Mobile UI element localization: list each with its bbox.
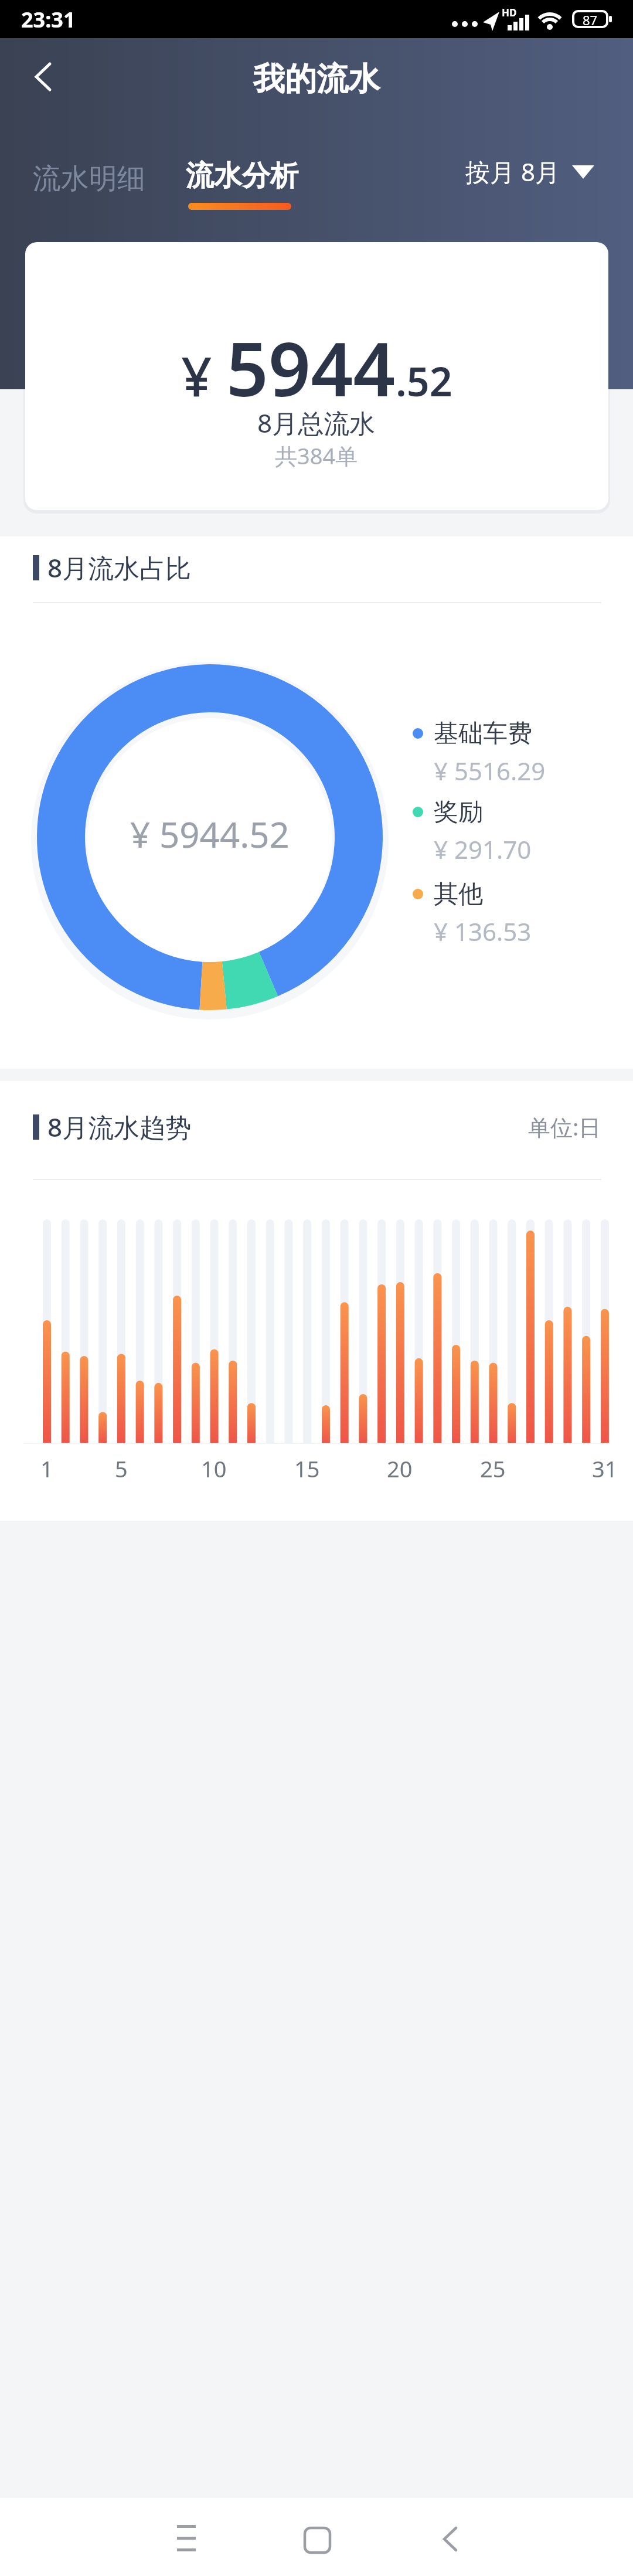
staticText: 8月总流水	[257, 405, 376, 440]
button[interactable]: 流水明细	[23, 152, 158, 205]
staticText: .52	[396, 354, 452, 408]
staticText: 5	[115, 1453, 128, 1484]
staticText: 流水分析	[186, 158, 298, 193]
staticText: 8月流水趋势	[47, 1109, 192, 1144]
staticText: 单位:日	[528, 1112, 601, 1142]
staticText: 奖励	[434, 797, 483, 828]
staticText: 25	[480, 1453, 506, 1484]
button[interactable]: 基础车费	[407, 710, 601, 757]
button[interactable]	[23, 59, 64, 100]
staticText: 我的流水	[253, 59, 380, 99]
button[interactable]: 奖励	[407, 789, 601, 835]
button[interactable]: 其他	[407, 871, 601, 917]
button[interactable]	[0, 1219, 633, 1443]
staticText: ¥	[181, 339, 226, 412]
staticText: 15	[294, 1453, 320, 1484]
staticText: 31	[592, 1453, 618, 1484]
staticText: ¥ 291.70	[434, 832, 532, 866]
staticText: 23:31	[21, 5, 76, 34]
staticText: 20	[387, 1453, 413, 1484]
button[interactable]	[152, 2506, 220, 2571]
button[interactable]	[416, 2506, 484, 2571]
staticText: 10	[201, 1453, 227, 1484]
staticText: 基础车费	[434, 718, 532, 749]
staticText: 5944	[226, 317, 396, 418]
staticText: ¥ 136.53	[434, 915, 532, 948]
staticText: 8月流水占比	[47, 550, 192, 585]
staticText: 87	[583, 11, 598, 28]
button[interactable]: 流水分析	[176, 152, 308, 217]
staticText: 按月 8月	[465, 155, 560, 188]
staticText: 共384单	[275, 440, 358, 471]
staticText: 流水明细	[33, 161, 145, 196]
staticText: ¥ 5516.29	[434, 754, 546, 787]
staticText: ¥ 5944.52	[130, 810, 290, 857]
button[interactable]: ¥	[25, 242, 608, 510]
staticText: 其他	[434, 879, 483, 910]
staticText: HD	[502, 6, 517, 19]
staticText: 1	[40, 1453, 53, 1484]
button[interactable]: 按月 8月	[451, 149, 610, 196]
button[interactable]	[284, 2506, 352, 2571]
